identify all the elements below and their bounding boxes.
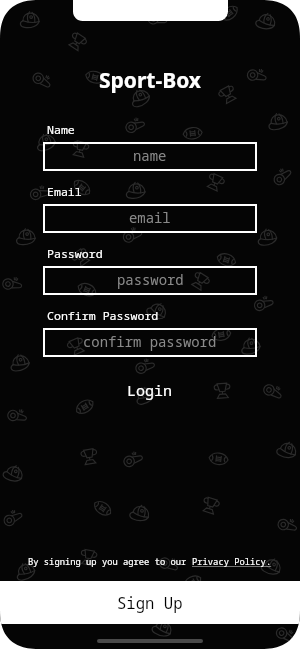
staticText: email [129, 208, 171, 227]
button[interactable]: Login [0, 378, 300, 402]
staticText: Sport-Box [0, 66, 300, 95]
staticText: Name [47, 122, 75, 138]
staticText: Confirm Password [47, 308, 159, 324]
staticText: password [117, 270, 184, 289]
staticText: confirm password [83, 332, 217, 351]
staticText: Sign Up [117, 592, 183, 613]
staticText: name [133, 146, 167, 165]
button[interactable]: Sign Up [0, 581, 300, 624]
button[interactable]: Privacy Policy. [192, 556, 272, 568]
staticText: Login [127, 380, 173, 400]
button[interactable]: name [44, 143, 256, 170]
staticText: Email [47, 184, 82, 200]
staticText: Password [47, 246, 103, 262]
button[interactable]: confirm password [44, 329, 256, 356]
button[interactable]: email [44, 205, 256, 232]
staticText: By signing up you agree to our [28, 556, 192, 568]
button[interactable]: password [44, 267, 256, 294]
